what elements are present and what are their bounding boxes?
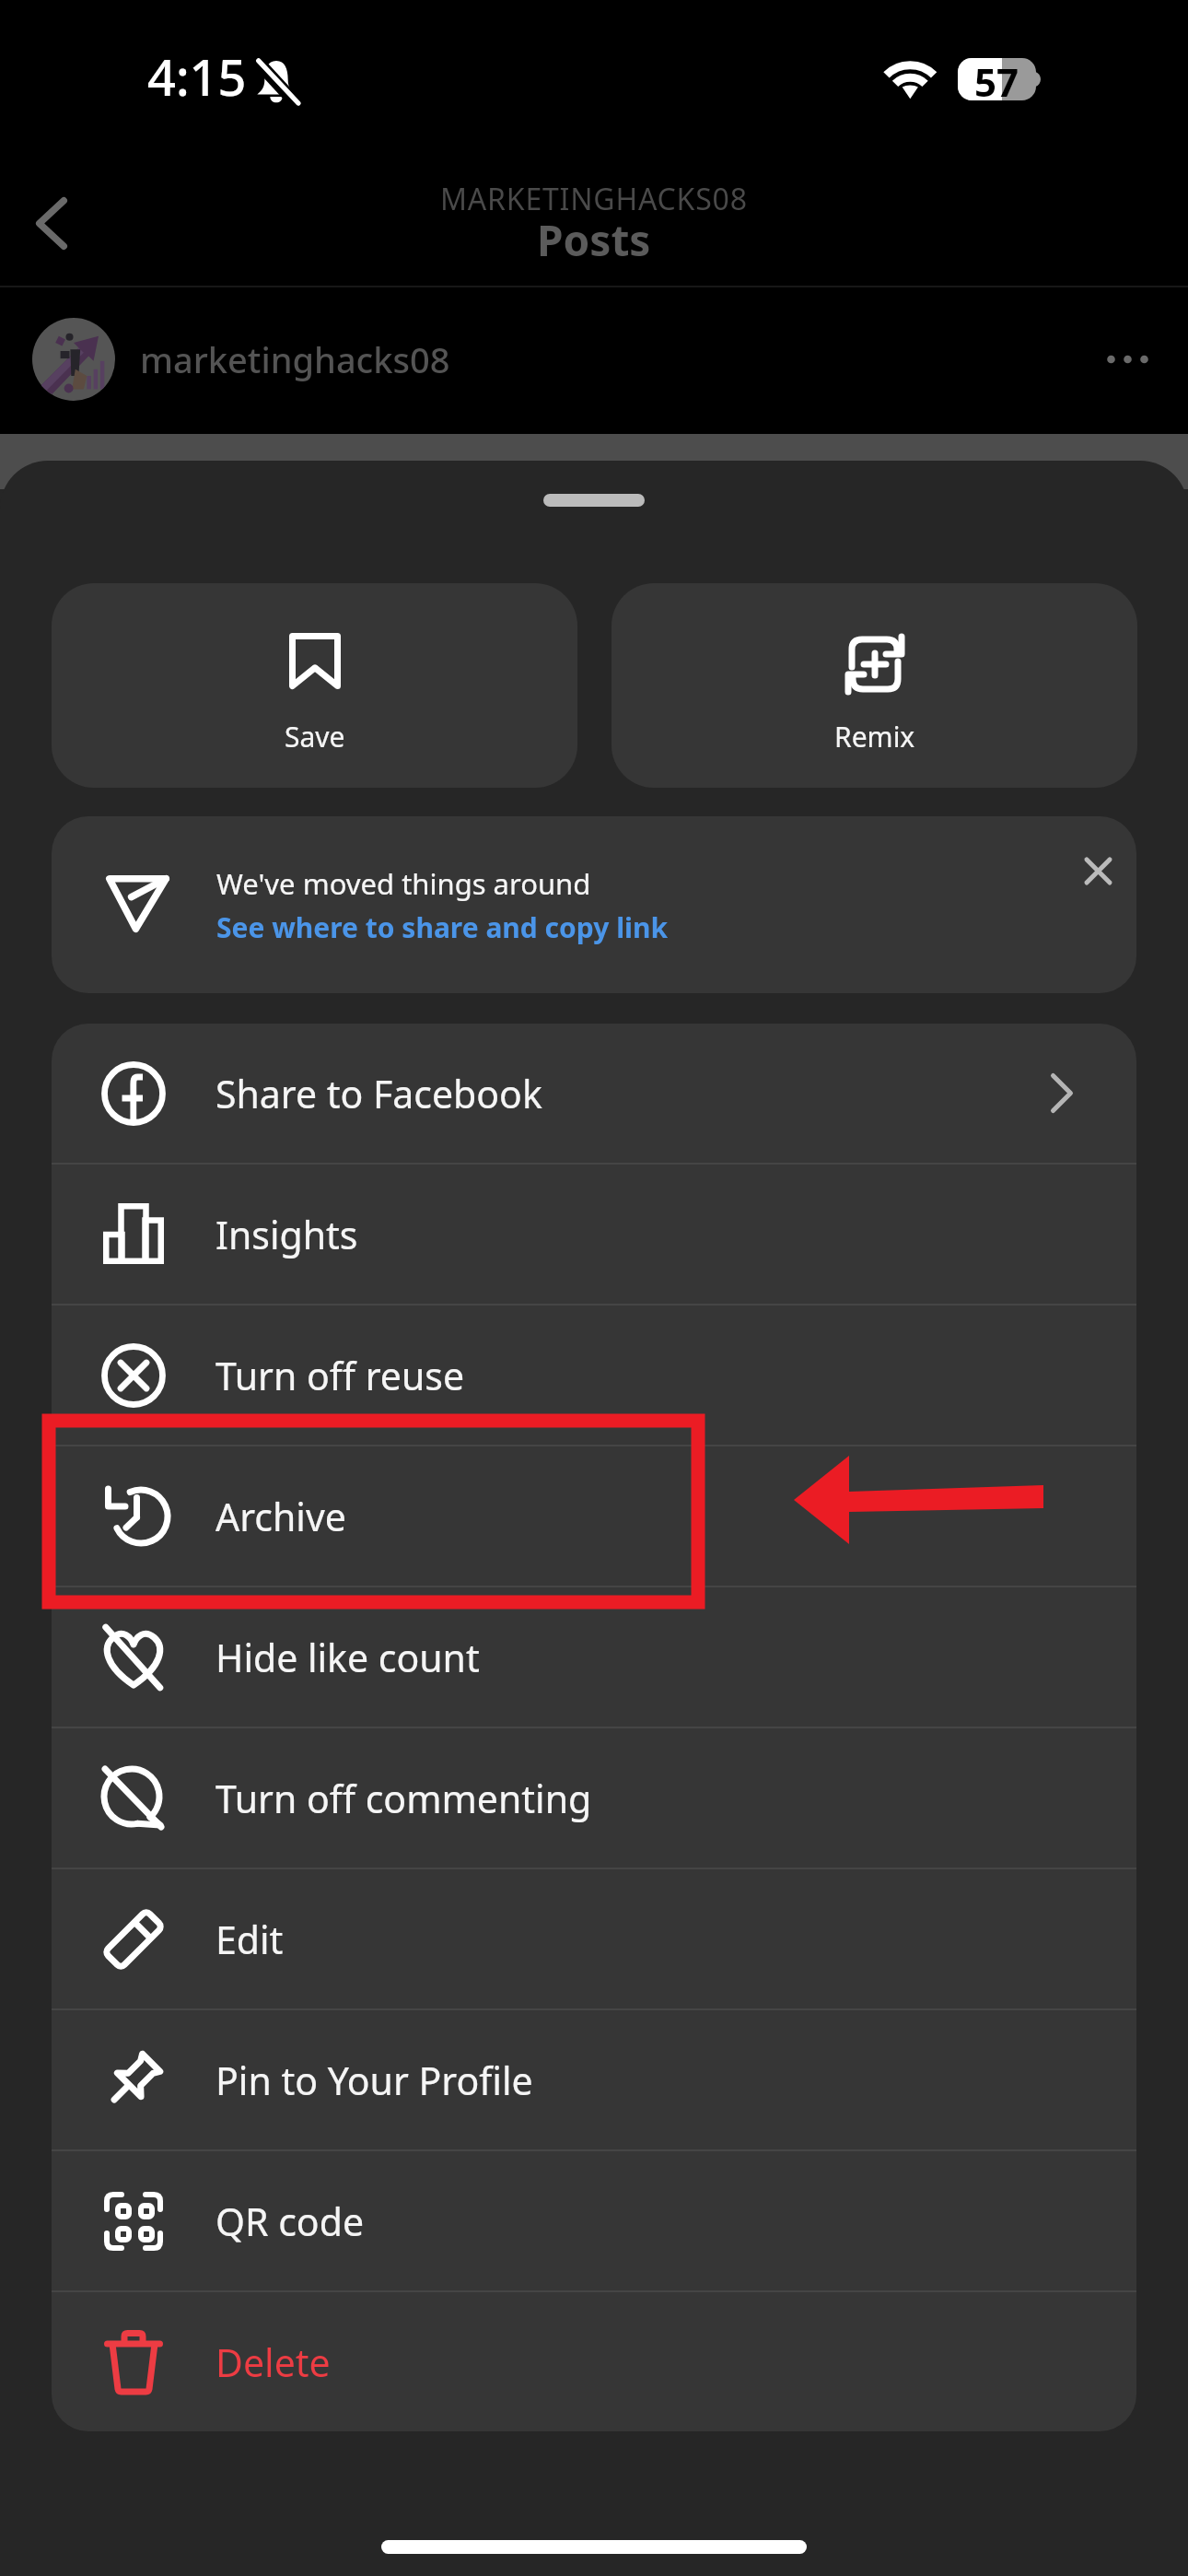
button[interactable]: Save: [52, 583, 577, 788]
staticText: 4:15: [147, 42, 247, 111]
staticText: Hide like count: [215, 1632, 480, 1683]
button[interactable]: Dismiss: [1063, 836, 1133, 906]
button[interactable]: We've moved things around: [52, 816, 1136, 993]
button[interactable]: Pin to Your Profile: [52, 2010, 1136, 2149]
button[interactable]: Insights: [52, 1165, 1136, 1304]
staticText: Pin to Your Profile: [215, 2055, 533, 2106]
button[interactable]: Delete: [52, 2292, 1136, 2431]
staticText: Edit: [215, 1914, 284, 1965]
button[interactable]: Back: [7, 179, 96, 267]
staticText: Turn off reuse: [215, 1350, 465, 1401]
staticText: QR code: [215, 2195, 365, 2247]
button[interactable]: Turn off reuse: [52, 1306, 1136, 1445]
button[interactable]: Edit: [52, 1869, 1136, 2008]
button[interactable]: Remix: [611, 583, 1137, 788]
staticText: Share to Facebook: [215, 1068, 542, 1119]
button[interactable]: QR code: [52, 2151, 1136, 2290]
staticText: MARKETINGHACKS08: [440, 179, 748, 219]
button[interactable]: Share to Facebook: [52, 1024, 1136, 1163]
button[interactable]: More options: [1083, 315, 1171, 404]
staticText: Save: [285, 718, 345, 755]
staticText: Turn off commenting: [215, 1773, 592, 1824]
button[interactable]: Hide like count: [52, 1587, 1136, 1727]
staticText: Insights: [215, 1209, 358, 1260]
staticText: Posts: [537, 211, 651, 269]
staticText: marketinghacks08: [140, 335, 450, 383]
staticText: 57: [974, 55, 1019, 108]
staticText: We've moved things around: [216, 864, 591, 903]
button[interactable]: Archive: [52, 1446, 1136, 1586]
staticText: See where to share and copy link: [216, 908, 669, 946]
staticText: Remix: [834, 718, 915, 755]
button[interactable]: Turn off commenting: [52, 1728, 1136, 1868]
staticText: Archive: [215, 1491, 346, 1542]
staticText: Delete: [215, 2336, 331, 2388]
